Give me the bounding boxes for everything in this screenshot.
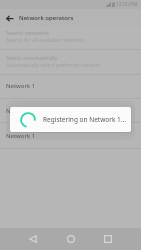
button[interactable]: Recent apps	[99, 230, 117, 248]
button[interactable]: Network 1	[0, 123, 141, 148]
button[interactable]: Back	[24, 230, 42, 248]
staticText: 12:00 PM	[116, 1, 138, 8]
staticText: Select automatically	[6, 54, 58, 61]
button[interactable]: Navigate up	[2, 11, 16, 25]
button[interactable]: Network 1	[0, 99, 141, 122]
staticText: Network operators	[19, 14, 74, 22]
staticText: Search networks	[6, 29, 49, 36]
button[interactable]: Select automatically	[0, 49, 141, 73]
staticText: Network 1	[6, 132, 36, 140]
button[interactable]: Home	[62, 230, 80, 248]
staticText: Network 1	[6, 107, 36, 115]
button[interactable]: Network 1	[0, 74, 141, 97]
staticText: Search for all available networks	[6, 36, 85, 43]
staticText: Registering on Network 1...	[43, 115, 126, 124]
button[interactable]: Search networks	[0, 25, 141, 47]
staticText: Automatically select preferred network	[6, 61, 101, 68]
staticText: Network 1	[6, 82, 36, 90]
